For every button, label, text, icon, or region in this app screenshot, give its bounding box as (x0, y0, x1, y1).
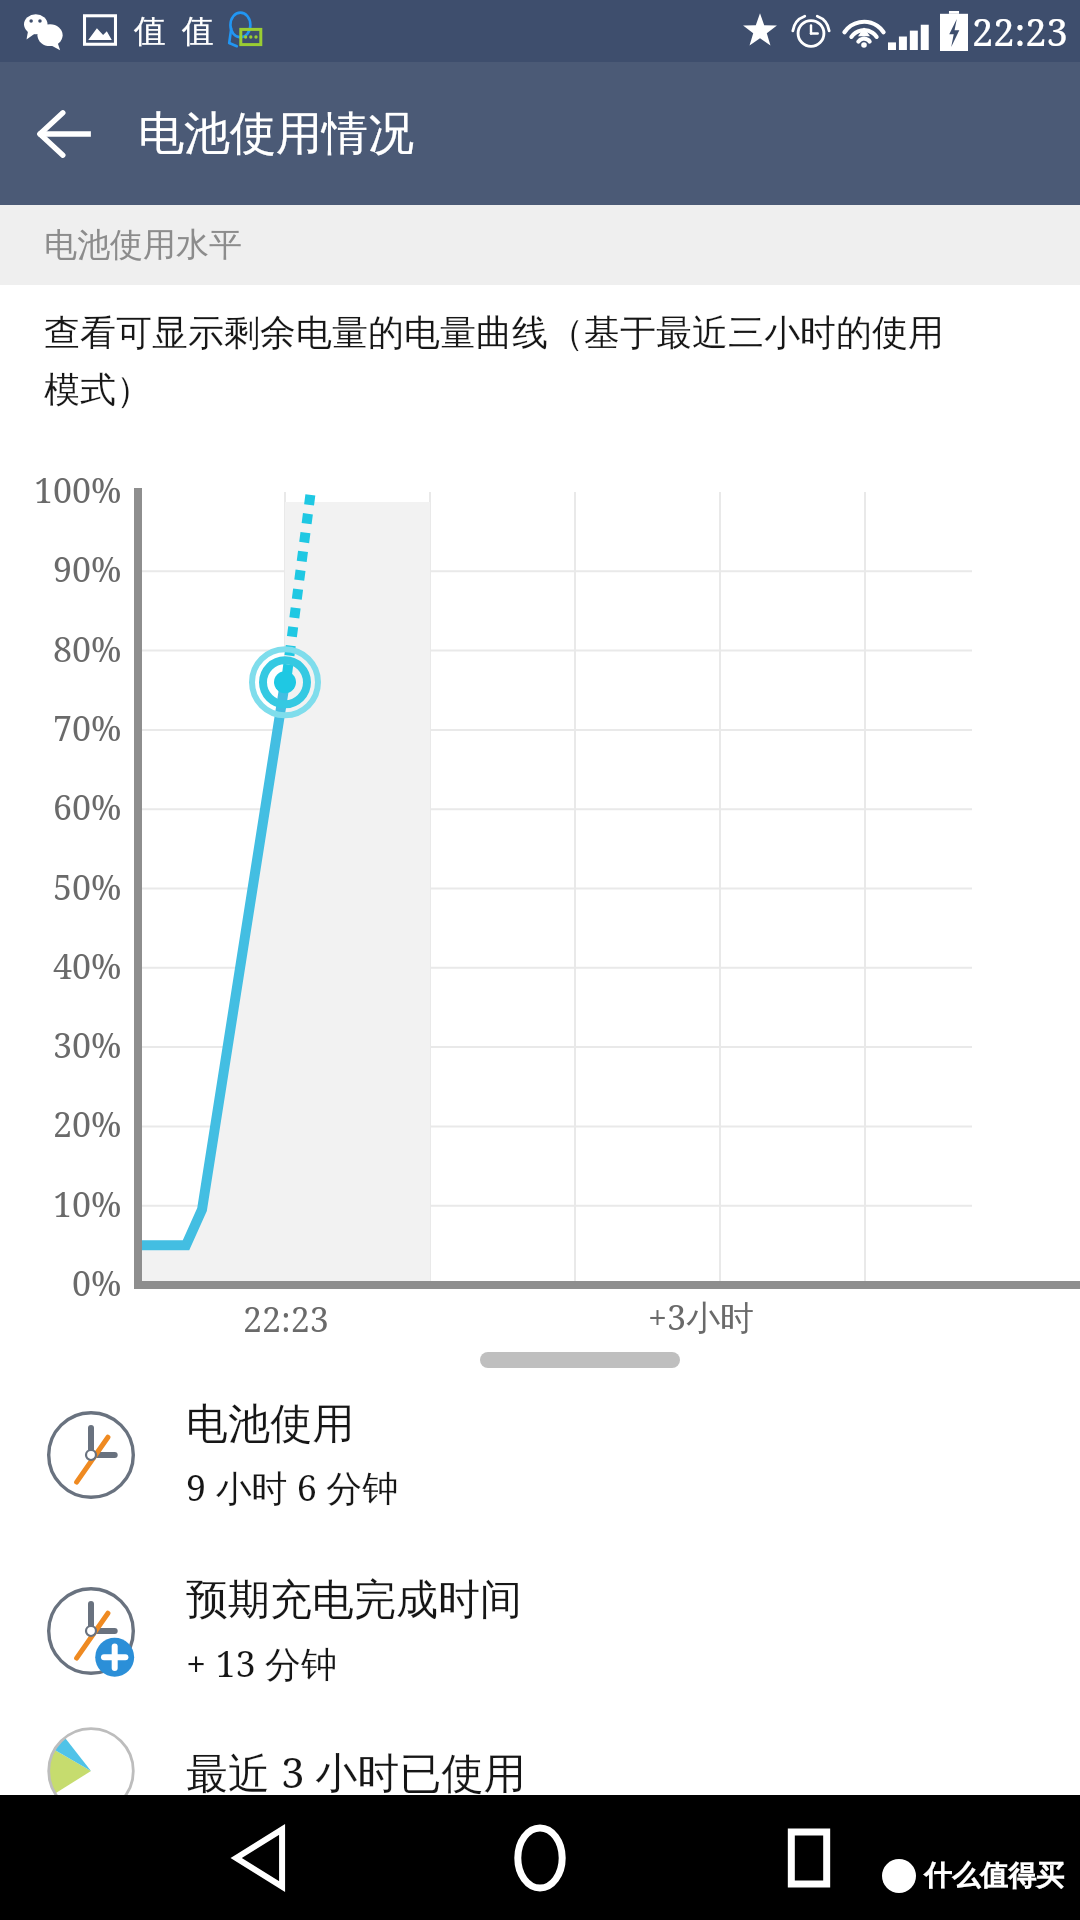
button[interactable]: 主屏幕 (484, 1802, 596, 1914)
staticText: 22:23 (243, 1296, 329, 1342)
staticText: 电池使用 (186, 1398, 354, 1451)
staticText: 查看可显示剩余电量的电量曲线（基于最近三小时的使用 (44, 310, 944, 355)
staticText: 什么值得买 (924, 1858, 1064, 1893)
staticText: 9 小时 6 分钟 (186, 1463, 399, 1512)
staticText: 30% (53, 1022, 122, 1068)
staticText: 22:23 (972, 5, 1068, 57)
staticText: 20% (53, 1101, 122, 1147)
button[interactable]: 最近 3 小时已使用 (0, 1716, 1080, 1826)
staticText: 电池使用水平 (44, 224, 242, 266)
staticText: 最近 3 小时已使用 (186, 1743, 526, 1800)
staticText: 40% (53, 943, 122, 989)
staticText: 值 (182, 11, 214, 51)
staticText: 70% (53, 705, 122, 751)
staticText: 80% (53, 626, 122, 672)
button[interactable]: 预期充电完成时间 (0, 1556, 1080, 1706)
staticText: +3小时 (648, 1294, 755, 1340)
staticText: 值 (134, 11, 166, 51)
staticText: 60% (53, 784, 122, 830)
staticText: 10% (53, 1181, 122, 1227)
button[interactable]: 返回 (205, 1802, 317, 1914)
staticText: 模式） (44, 367, 152, 412)
staticText: 预期充电完成时间 (186, 1574, 522, 1627)
button[interactable]: 最近任务 (753, 1802, 865, 1914)
staticText: + 13 分钟 (186, 1639, 338, 1688)
staticText: 0% (72, 1260, 122, 1306)
staticText: 电池使用情况 (138, 105, 414, 163)
staticText: 90% (53, 546, 122, 592)
staticText: 100% (34, 467, 122, 513)
button[interactable]: 电池使用 (0, 1380, 1080, 1530)
button[interactable]: 返回 (20, 90, 108, 178)
staticText: 50% (53, 864, 122, 910)
